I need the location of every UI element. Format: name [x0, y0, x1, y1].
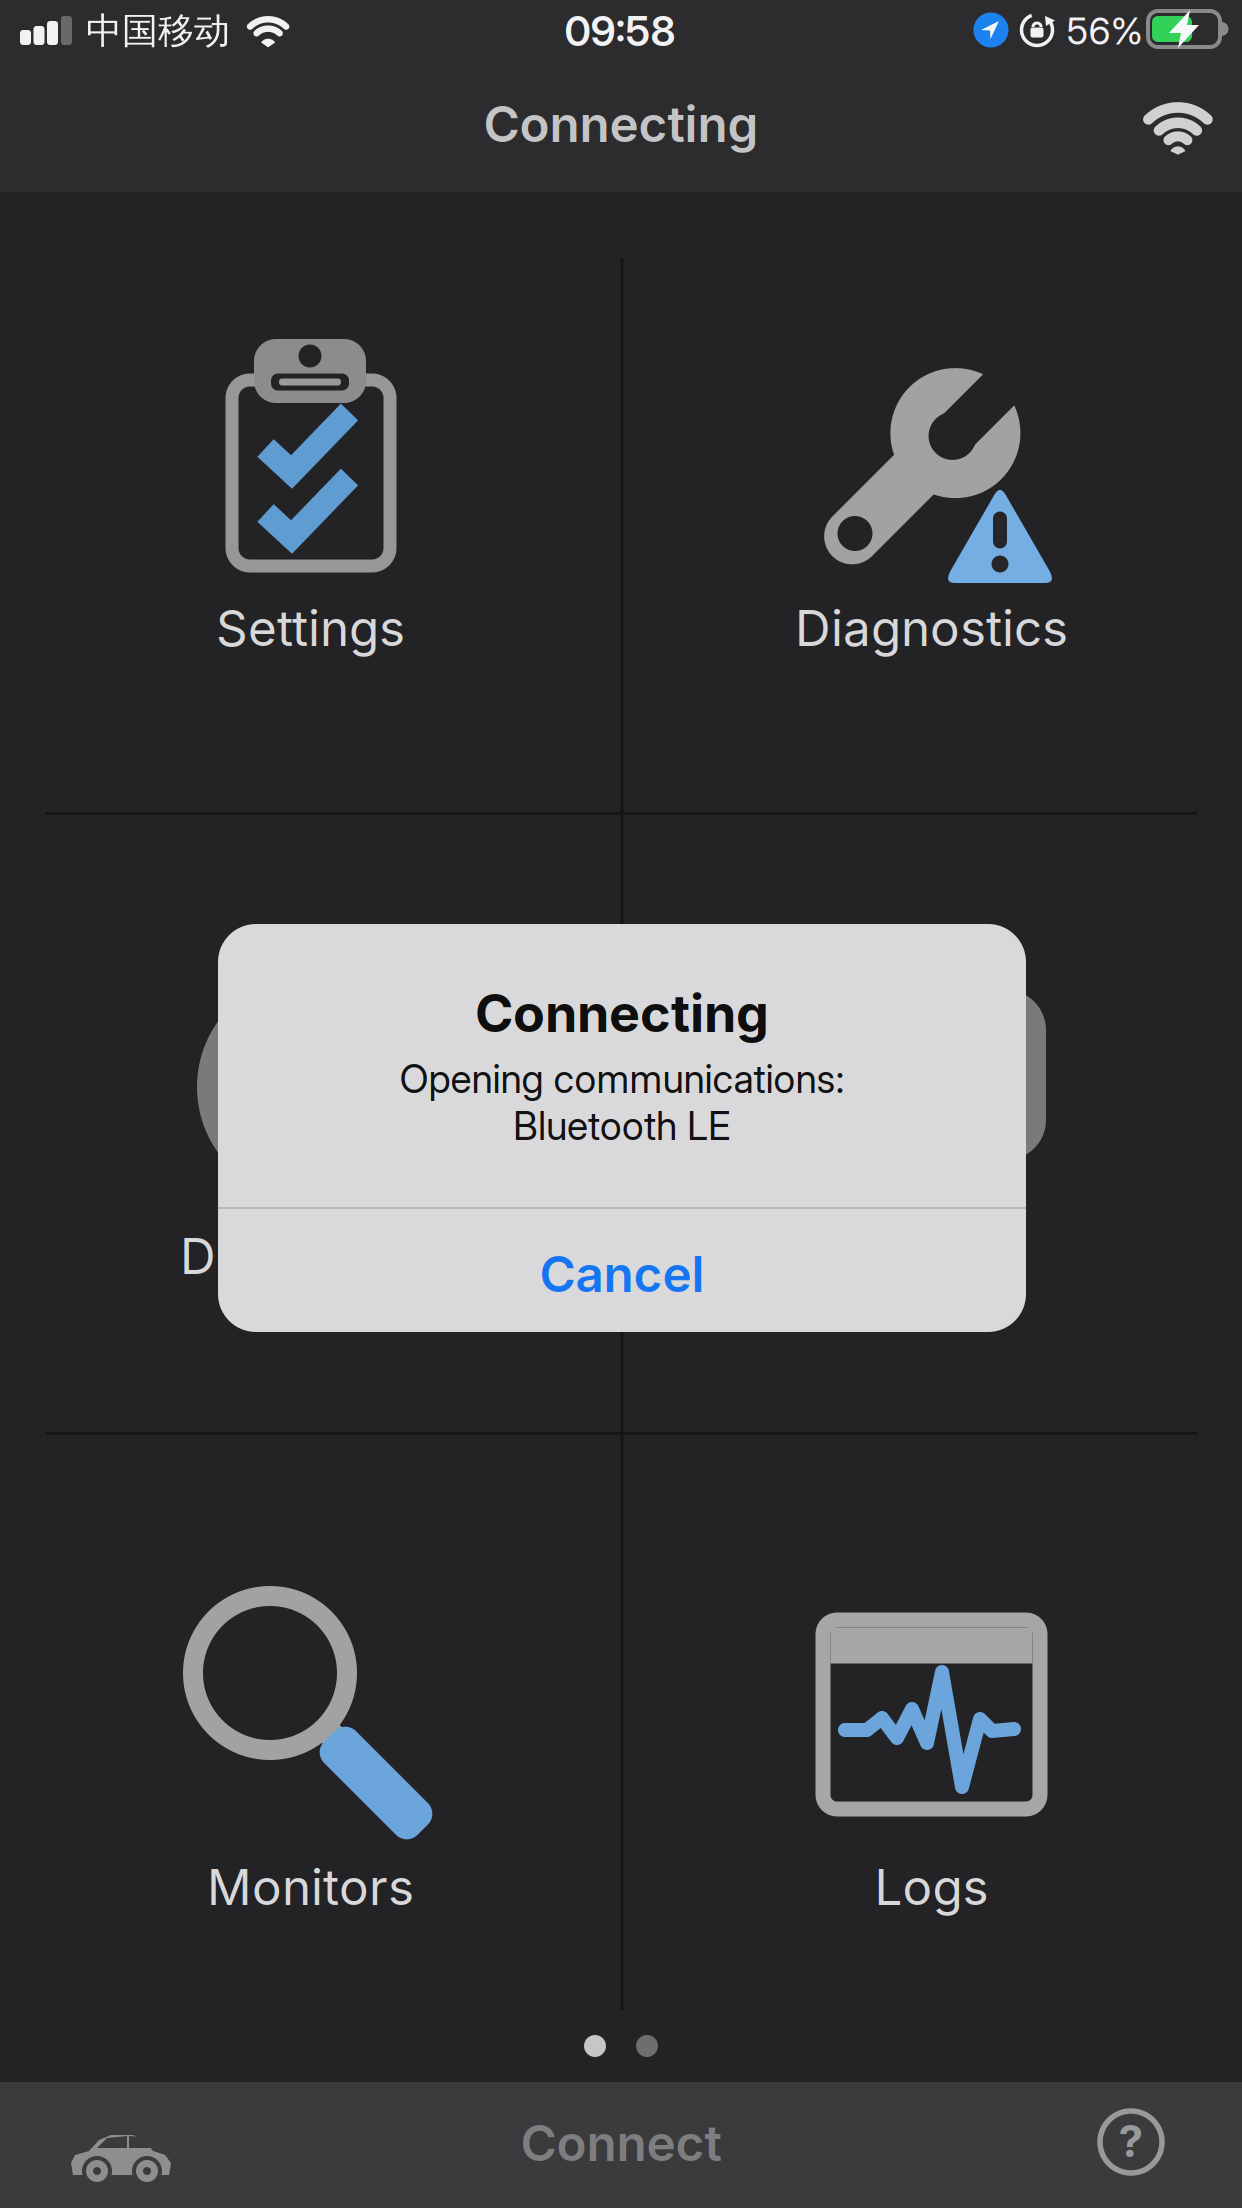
staticText: Connecting [475, 982, 769, 1044]
staticText: Settings [216, 599, 405, 657]
button[interactable]: Dashboards [2, 813, 618, 1433]
button[interactable]: Vehicle [63, 2118, 183, 2188]
button[interactable]: Monitors [2, 1433, 618, 2053]
button[interactable]: Wi-Fi connection [1142, 98, 1213, 152]
button[interactable]: Data [623, 813, 1239, 1433]
staticText: Opening communications: [399, 1056, 844, 1102]
button[interactable]: Connect [411, 2093, 831, 2193]
button[interactable]: Logs [623, 1433, 1239, 2053]
staticText: Dashboards [180, 1227, 461, 1285]
staticText: Diagnostics [795, 599, 1068, 657]
button[interactable]: Cancel [218, 1213, 1026, 1335]
staticText: Cancel [539, 1245, 704, 1303]
button[interactable]: Diagnostics [623, 192, 1239, 812]
staticText: 中国移动 [86, 9, 230, 53]
staticText: Connecting [483, 95, 758, 153]
staticText: Logs [874, 1858, 988, 1916]
staticText: 56% [1066, 9, 1143, 53]
staticText: Bluetooth LE [513, 1103, 731, 1149]
staticText: ? [1118, 2115, 1143, 2167]
staticText: 09:58 [564, 7, 675, 55]
button[interactable]: Help [1091, 2102, 1171, 2182]
button[interactable]: Settings [2, 192, 618, 812]
staticText: Monitors [207, 1858, 414, 1916]
staticText: Connect [520, 2114, 721, 2172]
